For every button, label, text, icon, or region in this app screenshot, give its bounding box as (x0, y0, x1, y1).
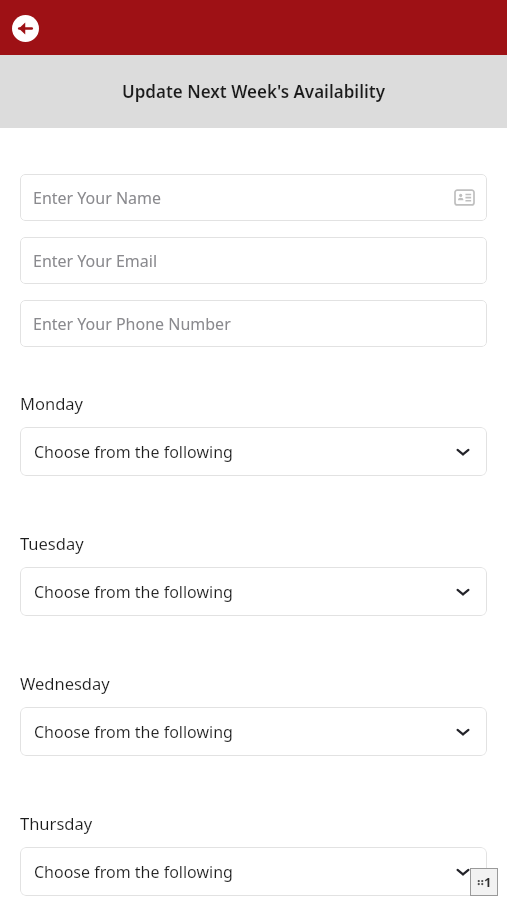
staticText: Update Next Week's Availability (122, 80, 385, 103)
staticText: 1 (484, 873, 492, 891)
staticText: Wednesday (20, 672, 110, 694)
button[interactable]: Choose from the following (20, 847, 487, 896)
staticText: Choose from the following (34, 861, 455, 883)
staticText: Monday (20, 392, 83, 414)
button[interactable]: Enter Your Name (20, 174, 487, 221)
staticText: Enter Your Phone Number (33, 313, 474, 335)
button[interactable]: Choose from the following (20, 567, 487, 616)
button[interactable]: Choose from the following (20, 707, 487, 756)
staticText: Choose from the following (34, 721, 455, 743)
button[interactable]: Choose from the following (20, 427, 487, 476)
staticText: Enter Your Name (33, 187, 455, 209)
button[interactable]: Back (1, 4, 49, 52)
staticText: Choose from the following (34, 581, 455, 603)
staticText: Choose from the following (34, 441, 455, 463)
staticText: Thursday (20, 812, 93, 834)
button[interactable]: Enter Your Email (20, 237, 487, 284)
staticText: Enter Your Email (33, 250, 474, 272)
button[interactable]: Enter Your Phone Number (20, 300, 487, 347)
staticText: Tuesday (20, 532, 84, 554)
button[interactable]: Resize (470, 868, 498, 896)
